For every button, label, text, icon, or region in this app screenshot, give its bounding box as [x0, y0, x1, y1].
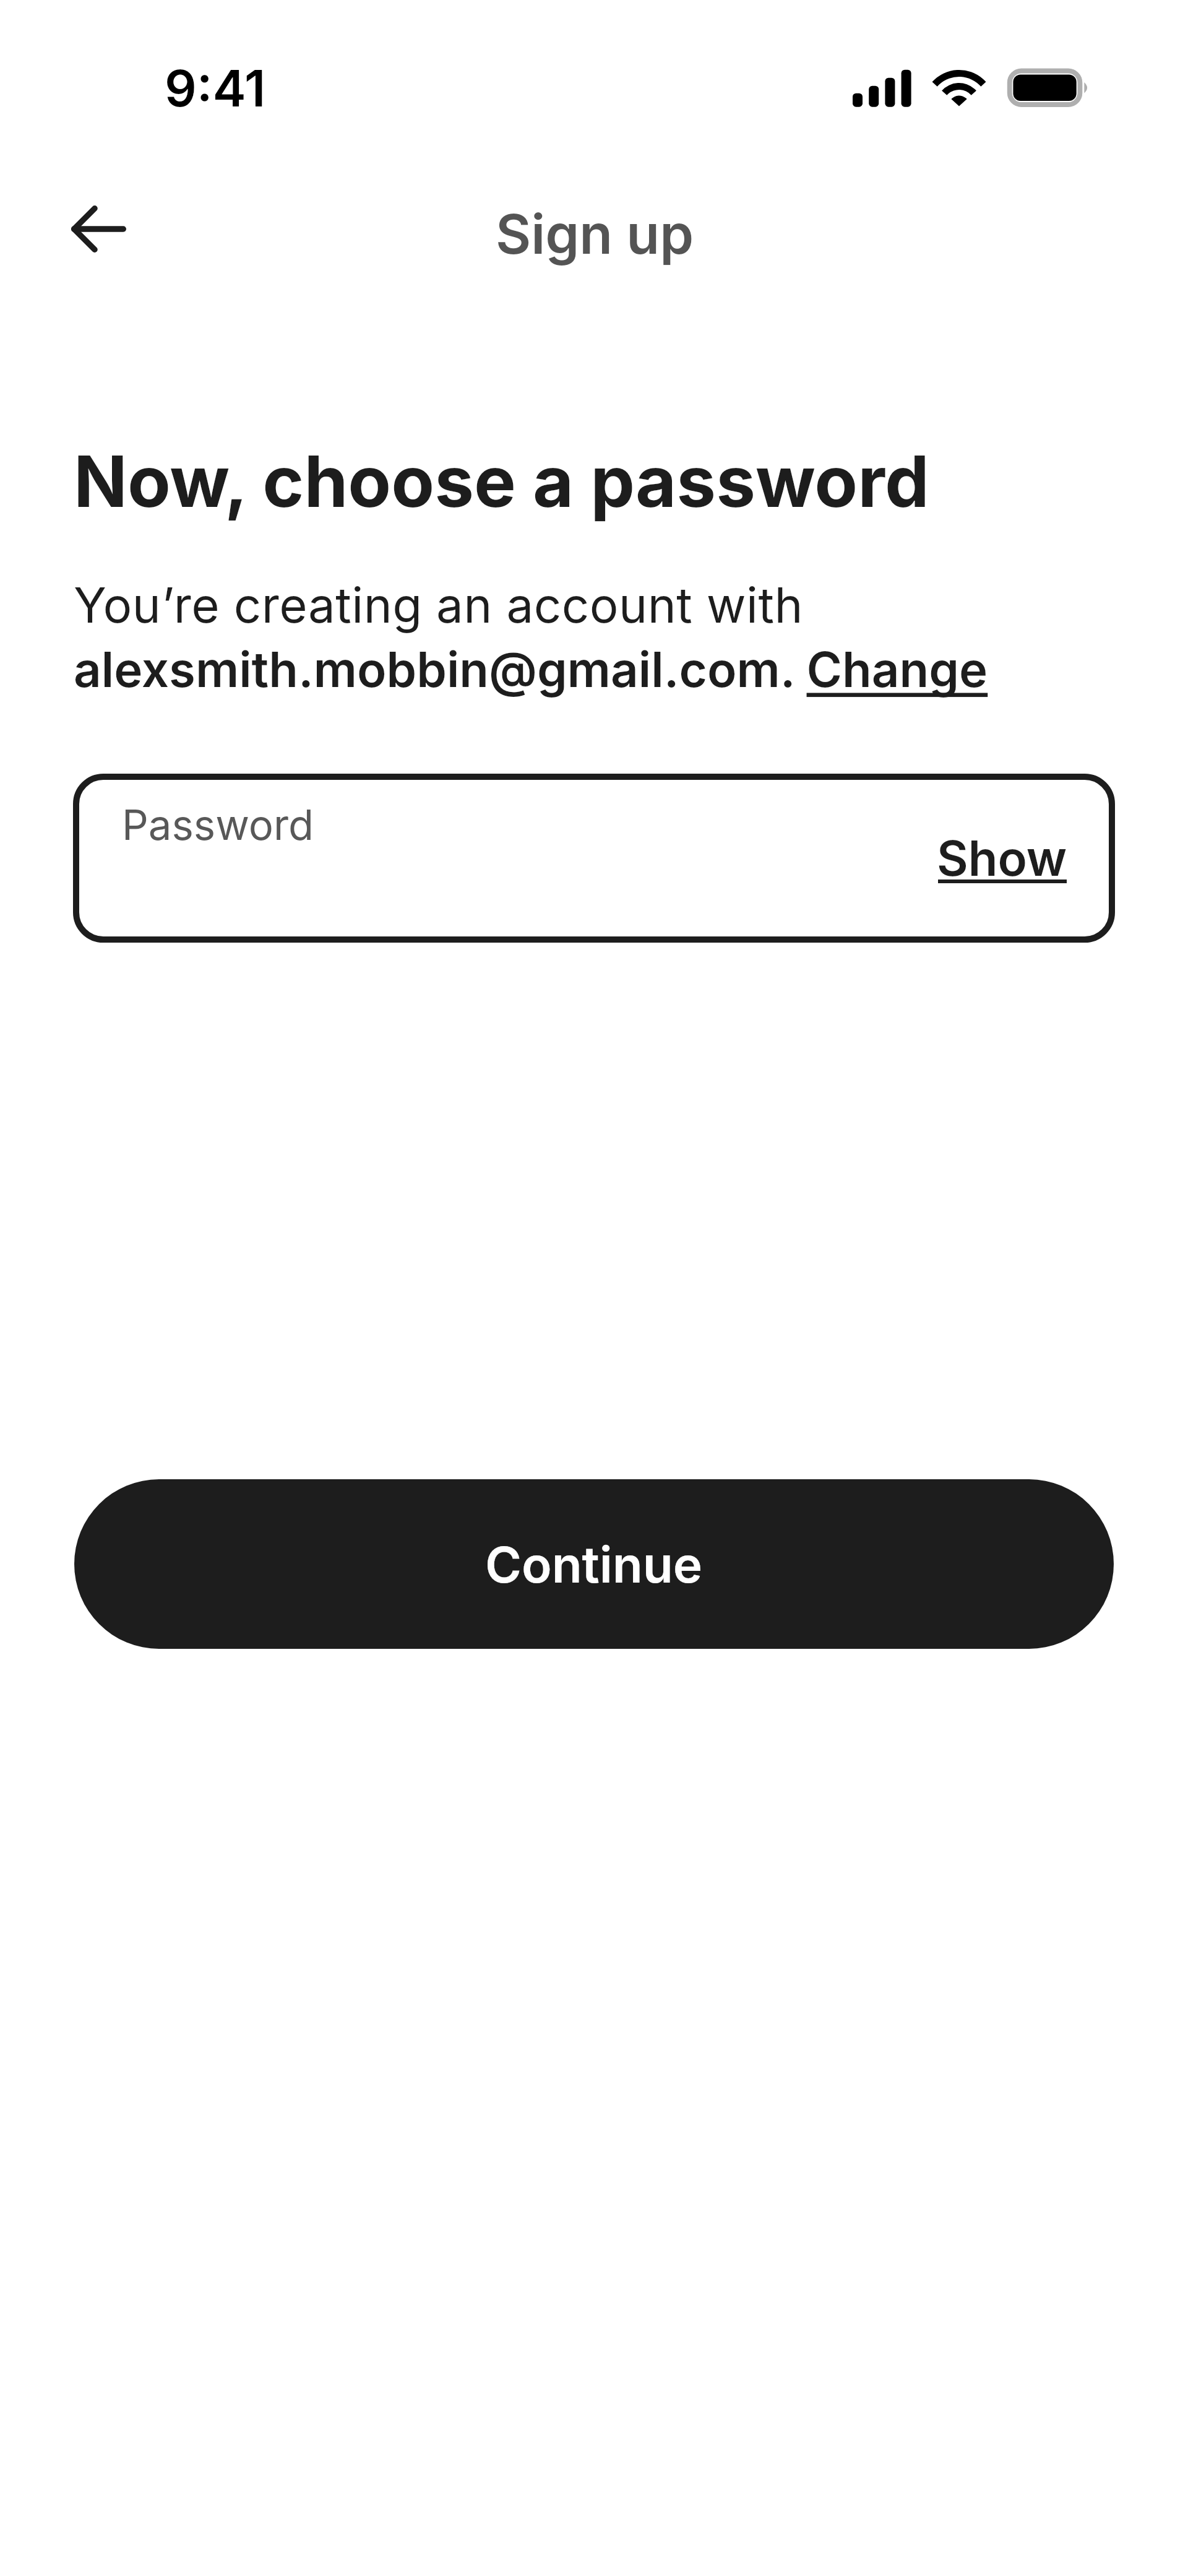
staticText: Show: [937, 829, 1067, 887]
staticText: 9:41: [165, 58, 266, 119]
button[interactable]: Password: [73, 774, 1115, 943]
staticText: Sign up: [496, 201, 694, 267]
staticText: Now, choose a password: [74, 439, 929, 524]
button[interactable]: Show: [927, 819, 1078, 889]
button[interactable]: Change email address: [804, 645, 988, 699]
staticText: You’re creating an account with alexsmit…: [74, 576, 1076, 699]
button[interactable]: Back: [58, 189, 139, 269]
staticText: Password: [122, 800, 314, 850]
button[interactable]: Continue: [74, 1479, 1114, 1649]
staticText: Continue: [485, 1534, 703, 1594]
